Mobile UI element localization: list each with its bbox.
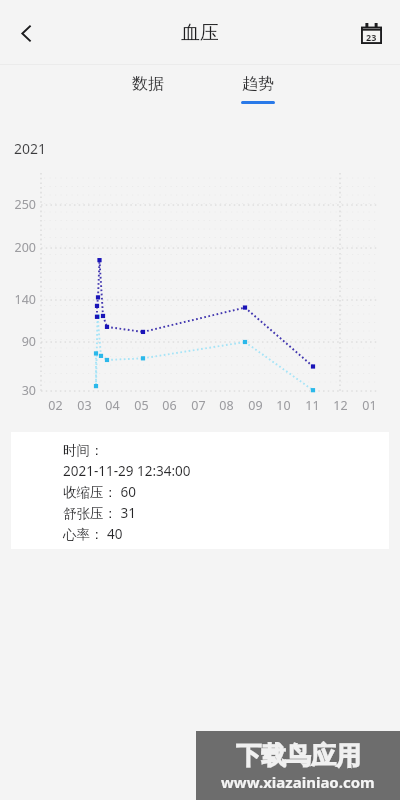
- staticText: 08: [219, 397, 234, 414]
- staticText: 11: [305, 397, 320, 414]
- staticText: 30: [21, 382, 36, 399]
- staticText: 90: [21, 333, 36, 350]
- staticText: 2021: [14, 139, 47, 158]
- staticText: 收缩压： 60: [63, 483, 136, 501]
- staticText: 血压: [181, 21, 219, 45]
- button[interactable]: Select date: [351, 13, 391, 53]
- staticText: 09: [248, 397, 263, 414]
- staticText: 时间：: [63, 442, 104, 459]
- staticText: 23: [366, 31, 377, 43]
- button[interactable]: Back: [4, 11, 48, 55]
- staticText: 趋势: [242, 74, 274, 94]
- button[interactable]: 数据: [108, 65, 188, 111]
- staticText: 02: [48, 397, 63, 414]
- staticText: 数据: [132, 74, 164, 94]
- button[interactable]: 趋势: [218, 65, 298, 111]
- staticText: 05: [134, 397, 149, 414]
- staticText: 舒张压： 31: [63, 504, 136, 522]
- staticText: 10: [276, 397, 291, 414]
- staticText: 03: [77, 397, 92, 414]
- staticText: 07: [191, 397, 206, 414]
- staticText: 200: [14, 239, 36, 256]
- staticText: 心率： 40: [63, 525, 123, 543]
- staticText: 06: [162, 397, 177, 414]
- staticText: 2021-11-29 12:34:00: [63, 462, 191, 480]
- staticText: www.xiazainiao.com: [221, 772, 375, 792]
- staticText: 01: [362, 397, 377, 414]
- staticText: 12: [333, 397, 348, 414]
- staticText: 下载鸟应用: [236, 740, 361, 771]
- button[interactable]: 时间：: [11, 432, 389, 549]
- staticText: 140: [14, 291, 36, 308]
- staticText: 04: [105, 397, 120, 414]
- staticText: 250: [14, 196, 36, 213]
